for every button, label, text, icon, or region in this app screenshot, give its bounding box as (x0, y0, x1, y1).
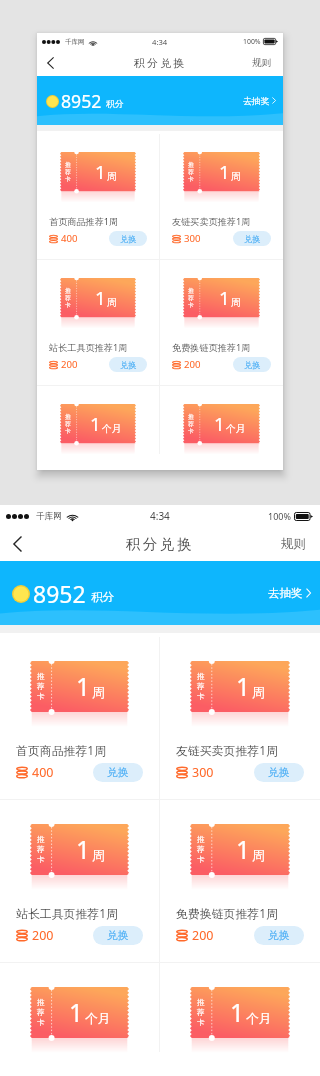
staticText: 首页商品推荐1周 (49, 215, 119, 227)
button[interactable]: 兑换 (109, 231, 147, 246)
staticText: 个月 (246, 1011, 272, 1027)
staticText: 卡 (37, 855, 45, 865)
staticText: 兑换 (120, 234, 137, 244)
staticText: 荐 (188, 294, 194, 301)
button[interactable]: 兑换 (254, 926, 304, 945)
staticText: 卡 (197, 1018, 205, 1028)
button[interactable]: 推 (37, 134, 159, 259)
staticText: 400 (61, 232, 78, 245)
staticText: 荐 (197, 845, 205, 855)
staticText: 荐 (65, 420, 71, 427)
button[interactable]: 推 (160, 637, 320, 799)
staticText: 卡 (197, 855, 205, 865)
staticText: 1 (76, 833, 91, 866)
staticText: 卡 (37, 1018, 45, 1028)
staticText: 周 (252, 685, 265, 701)
staticText: 1 (90, 411, 101, 437)
button[interactable]: 推 (160, 134, 283, 259)
staticText: 周 (231, 297, 241, 309)
staticText: 千库网 (65, 38, 85, 46)
staticText: 推 (37, 998, 45, 1008)
staticText: 首页商品推荐1周 (16, 742, 107, 758)
button[interactable]: 推 (0, 637, 159, 799)
staticText: 周 (252, 848, 265, 864)
button[interactable]: 推 (0, 800, 159, 962)
staticText: 1 (236, 670, 251, 703)
staticText: 300 (184, 232, 201, 245)
staticText: 推 (65, 161, 71, 168)
staticText: 1 (214, 411, 225, 437)
staticText: 兑换 (244, 234, 261, 244)
staticText: 荐 (188, 420, 194, 427)
staticText: 1 (219, 285, 230, 311)
staticText: 200 (184, 358, 201, 371)
staticText: 1 (76, 670, 91, 703)
staticText: 规则 (281, 536, 306, 552)
button[interactable]: 推 (160, 260, 283, 385)
staticText: 友链买卖页推荐1周 (172, 215, 251, 227)
staticText: 周 (107, 171, 117, 183)
staticText: 300 (192, 764, 214, 781)
staticText: 8952 (33, 578, 86, 609)
staticText: 兑换 (268, 766, 290, 780)
staticText: 1 (69, 996, 84, 1029)
staticText: 友链买卖页推荐1周 (176, 742, 278, 758)
staticText: 荐 (188, 168, 194, 175)
staticText: 卡 (65, 301, 71, 308)
button[interactable]: 兑换 (233, 231, 271, 246)
staticText: 1 (95, 285, 106, 311)
staticText: 推 (188, 287, 194, 294)
staticText: 免费换链页推荐1周 (172, 341, 251, 353)
staticText: 卡 (65, 175, 71, 182)
staticText: 积分 (106, 98, 124, 109)
staticText: 兑换 (120, 360, 137, 370)
staticText: 8952 (61, 89, 102, 113)
staticText: 个月 (85, 1011, 111, 1027)
staticText: 荐 (37, 1008, 45, 1018)
staticText: 200 (61, 358, 78, 371)
button[interactable]: 去抽奖 (234, 76, 283, 125)
button[interactable]: 兑换 (254, 763, 304, 782)
staticText: 200 (32, 927, 54, 944)
staticText: 卡 (197, 692, 205, 702)
button[interactable]: 推 (160, 800, 320, 962)
staticText: 推 (188, 413, 194, 420)
staticText: 4:34 (150, 509, 170, 523)
staticText: 积分兑换 (126, 535, 194, 553)
staticText: 个月 (102, 423, 122, 435)
staticText: 100% (243, 37, 261, 46)
staticText: 荐 (197, 1008, 205, 1018)
button[interactable]: 规则 (241, 50, 283, 76)
staticText: 积分兑换 (134, 56, 187, 70)
button[interactable]: 推 (160, 963, 320, 1052)
staticText: 推 (65, 413, 71, 420)
staticText: 100% (268, 510, 291, 522)
button[interactable]: 兑换 (93, 926, 143, 945)
button[interactable]: 去抽奖 (256, 561, 320, 625)
staticText: 兑换 (107, 766, 129, 780)
staticText: 卡 (188, 175, 194, 182)
staticText: 千库网 (36, 511, 62, 522)
button[interactable]: 规则 (267, 527, 320, 561)
staticText: 200 (192, 927, 214, 944)
staticText: 规则 (252, 57, 272, 69)
button[interactable]: 兑换 (109, 357, 147, 372)
staticText: 推 (197, 672, 205, 682)
button[interactable]: 推 (0, 963, 159, 1052)
staticText: 卡 (188, 427, 194, 434)
staticText: 免费换链页推荐1周 (176, 905, 278, 921)
button[interactable]: 兑换 (233, 357, 271, 372)
button[interactable]: Back (37, 50, 63, 76)
staticText: 去抽奖 (243, 95, 270, 106)
staticText: 兑换 (244, 360, 261, 370)
staticText: 周 (107, 297, 117, 309)
button[interactable]: 兑换 (93, 763, 143, 782)
staticText: 兑换 (268, 929, 290, 943)
staticText: 1 (95, 159, 106, 185)
button[interactable]: Back (0, 527, 34, 561)
button[interactable]: 推 (37, 260, 159, 385)
staticText: 周 (92, 848, 105, 864)
staticText: 推 (65, 287, 71, 294)
button[interactable]: 推 (160, 386, 283, 454)
button[interactable]: 推 (37, 386, 159, 454)
